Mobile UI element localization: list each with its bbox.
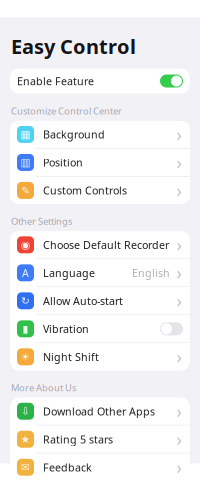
- staticText: ›: [176, 233, 181, 256]
- button[interactable]: ▥: [10, 149, 190, 176]
- staticText: ▦: [20, 128, 30, 140]
- staticText: ↻: [21, 295, 30, 307]
- staticText: Position: [43, 155, 83, 170]
- staticText: ◉: [21, 239, 30, 251]
- button[interactable]: A: [10, 259, 190, 286]
- button[interactable]: ↻: [10, 287, 190, 314]
- staticText: A: [22, 266, 29, 280]
- staticText: ▥: [20, 156, 30, 168]
- staticText: ›: [176, 345, 181, 368]
- staticText: ›: [176, 289, 181, 312]
- staticText: ›: [176, 456, 181, 479]
- staticText: ›: [176, 428, 181, 451]
- staticText: English: [132, 266, 170, 280]
- staticText: Vibration: [43, 322, 89, 336]
- staticText: Rating 5 stars: [43, 432, 113, 446]
- staticText: ›: [176, 261, 181, 284]
- staticText: ✉: [21, 461, 30, 473]
- staticText: Custom Controls: [43, 183, 127, 198]
- staticText: ▮: [22, 323, 28, 335]
- staticText: ★: [20, 433, 30, 445]
- staticText: Easy Control: [11, 33, 136, 60]
- button[interactable]: ☀: [10, 343, 190, 370]
- staticText: ›: [176, 400, 181, 423]
- staticText: Background: [43, 127, 105, 142]
- button[interactable]: ★: [10, 426, 190, 453]
- button[interactable]: ✉: [10, 454, 190, 481]
- staticText: Download Other Apps: [43, 404, 155, 418]
- button[interactable]: ⇩: [10, 398, 190, 425]
- staticText: Other Settings: [11, 215, 72, 227]
- staticText: Night Shift: [43, 350, 99, 364]
- staticText: Choose Default Recorder: [43, 238, 169, 252]
- staticText: Feedback: [43, 460, 92, 474]
- button[interactable]: Enable Feature: [10, 69, 190, 94]
- staticText: Enable Feature: [17, 74, 94, 88]
- staticText: Language: [43, 266, 95, 280]
- button[interactable]: ▮: [10, 315, 190, 342]
- staticText: Customize Control Center: [11, 105, 122, 117]
- button[interactable]: ✎: [10, 177, 190, 204]
- button[interactable]: ◉: [10, 231, 190, 258]
- staticText: ›: [176, 179, 181, 202]
- button[interactable]: ▦: [10, 121, 190, 148]
- staticText: More About Us: [11, 381, 76, 394]
- staticText: Allow Auto-start: [43, 294, 123, 308]
- staticText: ⇩: [21, 405, 30, 417]
- staticText: ›: [176, 123, 181, 146]
- staticText: ✎: [21, 184, 30, 196]
- staticText: ☀: [20, 351, 30, 363]
- staticText: ›: [176, 151, 181, 174]
